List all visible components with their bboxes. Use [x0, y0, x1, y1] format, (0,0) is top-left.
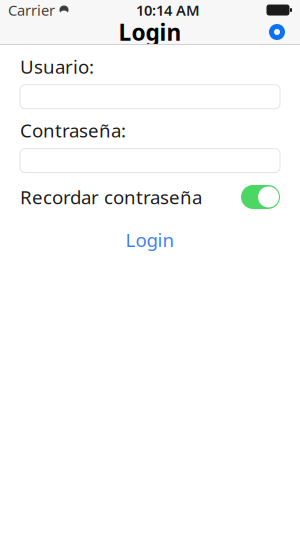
staticText: Login — [125, 227, 174, 252]
staticText: Usuario: — [20, 54, 94, 79]
button[interactable]: Contraseña — [20, 143, 280, 173]
staticText: Recordar contraseña — [20, 185, 202, 209]
staticText: Carrier — [8, 0, 55, 20]
button[interactable]: Usuario — [20, 79, 280, 109]
staticText: 10:14 AM — [136, 0, 200, 20]
button[interactable]: Login — [113, 223, 186, 256]
staticText: Login — [118, 17, 181, 47]
staticText: Contraseña: — [20, 118, 126, 143]
button[interactable]: Settings — [264, 20, 290, 44]
button[interactable]: Recordar contraseña — [241, 185, 280, 209]
